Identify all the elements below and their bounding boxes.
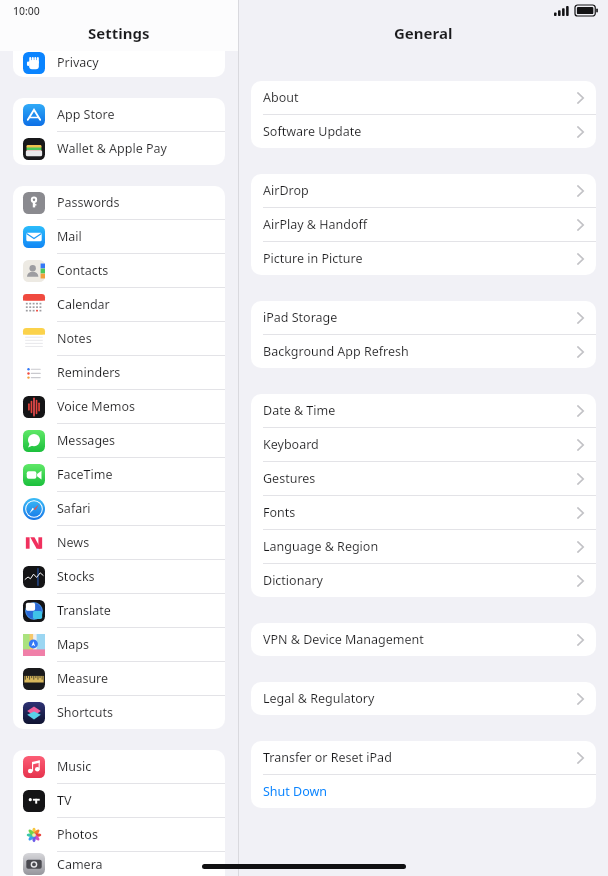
button[interactable]: VPN & Device Management bbox=[251, 623, 596, 656]
button[interactable]: Date & Time bbox=[251, 394, 596, 427]
staticText: Background App Refresh bbox=[263, 343, 409, 360]
staticText: Dictionary bbox=[263, 572, 323, 589]
button[interactable]: Shortcuts bbox=[13, 696, 225, 729]
staticText: Shortcuts bbox=[57, 704, 114, 721]
staticText: Calendar bbox=[57, 296, 110, 313]
button[interactable]: Music bbox=[13, 750, 225, 783]
staticText: TV bbox=[57, 792, 72, 809]
button[interactable]: Background App Refresh bbox=[251, 335, 596, 368]
button[interactable]: Wallet & Apple Pay bbox=[13, 132, 225, 165]
button[interactable]: Measure bbox=[13, 662, 225, 695]
staticText: Settings bbox=[88, 23, 150, 43]
button[interactable]: Software Update bbox=[251, 115, 596, 148]
staticText: Notes bbox=[57, 330, 92, 347]
staticText: Fonts bbox=[263, 504, 296, 521]
button[interactable]: TV bbox=[13, 784, 225, 817]
button[interactable]: Stocks bbox=[13, 560, 225, 593]
button[interactable]: Calendar bbox=[13, 288, 225, 321]
staticText: Messages bbox=[57, 432, 116, 449]
button[interactable]: Dictionary bbox=[251, 564, 596, 597]
button[interactable]: AirPlay & Handoff bbox=[251, 208, 596, 241]
staticText: FaceTime bbox=[57, 466, 113, 483]
staticText: Date & Time bbox=[263, 402, 336, 419]
button[interactable]: FaceTime bbox=[13, 458, 225, 491]
staticText: Software Update bbox=[263, 123, 362, 140]
button[interactable]: Safari bbox=[13, 492, 225, 525]
staticText: Measure bbox=[57, 670, 109, 687]
button[interactable]: Keyboard bbox=[251, 428, 596, 461]
staticText: Stocks bbox=[57, 568, 95, 585]
staticText: App Store bbox=[57, 106, 115, 123]
staticText: Mail bbox=[57, 228, 82, 245]
staticText: AirPlay & Handoff bbox=[263, 216, 368, 233]
staticText: Reminders bbox=[57, 364, 121, 381]
staticText: Maps bbox=[57, 636, 90, 653]
button[interactable]: Legal & Regulatory bbox=[251, 682, 596, 715]
staticText: Shut Down bbox=[263, 783, 328, 800]
staticText: Wallet & Apple Pay bbox=[57, 140, 167, 157]
staticText: Language & Region bbox=[263, 538, 379, 555]
button[interactable]: Privacy bbox=[13, 51, 225, 77]
button[interactable]: News bbox=[13, 526, 225, 559]
staticText: Contacts bbox=[57, 262, 109, 279]
staticText: Picture in Picture bbox=[263, 250, 363, 267]
button[interactable]: Notes bbox=[13, 322, 225, 355]
staticText: Passwords bbox=[57, 194, 120, 211]
button[interactable]: Shut Down bbox=[251, 775, 596, 808]
staticText: VPN & Device Management bbox=[263, 631, 424, 648]
button[interactable]: Transfer or Reset iPad bbox=[251, 741, 596, 774]
button[interactable]: AirDrop bbox=[251, 174, 596, 207]
staticText: Privacy bbox=[57, 54, 99, 71]
button[interactable]: Fonts bbox=[251, 496, 596, 529]
staticText: General bbox=[394, 23, 453, 43]
button[interactable]: About bbox=[251, 81, 596, 114]
staticText: Legal & Regulatory bbox=[263, 690, 375, 707]
other: Battery bbox=[575, 5, 598, 16]
staticText: Music bbox=[57, 758, 92, 775]
button[interactable]: iPad Storage bbox=[251, 301, 596, 334]
button[interactable]: Maps bbox=[13, 628, 225, 661]
staticText: Photos bbox=[57, 826, 98, 843]
button[interactable]: Passwords bbox=[13, 186, 225, 219]
button[interactable]: Language & Region bbox=[251, 530, 596, 563]
button[interactable]: Reminders bbox=[13, 356, 225, 389]
button[interactable]: Voice Memos bbox=[13, 390, 225, 423]
staticText: Gestures bbox=[263, 470, 316, 487]
staticText: iPad Storage bbox=[263, 309, 338, 326]
staticText: Transfer or Reset iPad bbox=[263, 749, 392, 766]
button[interactable]: Camera bbox=[13, 852, 225, 876]
other: Cellular signal bbox=[554, 6, 570, 16]
button[interactable]: Messages bbox=[13, 424, 225, 457]
staticText: 10:00 bbox=[13, 4, 40, 18]
staticText: About bbox=[263, 89, 299, 106]
button[interactable]: Contacts bbox=[13, 254, 225, 287]
button[interactable]: Photos bbox=[13, 818, 225, 851]
staticText: Voice Memos bbox=[57, 398, 135, 415]
button[interactable]: Gestures bbox=[251, 462, 596, 495]
staticText: Safari bbox=[57, 500, 91, 517]
staticText: Camera bbox=[57, 856, 103, 873]
staticText: AirDrop bbox=[263, 182, 309, 199]
staticText: Translate bbox=[57, 602, 111, 619]
button[interactable]: App Store bbox=[13, 98, 225, 131]
button[interactable]: Translate bbox=[13, 594, 225, 627]
staticText: News bbox=[57, 534, 90, 551]
button[interactable]: Picture in Picture bbox=[251, 242, 596, 275]
button[interactable]: Mail bbox=[13, 220, 225, 253]
staticText: Keyboard bbox=[263, 436, 319, 453]
